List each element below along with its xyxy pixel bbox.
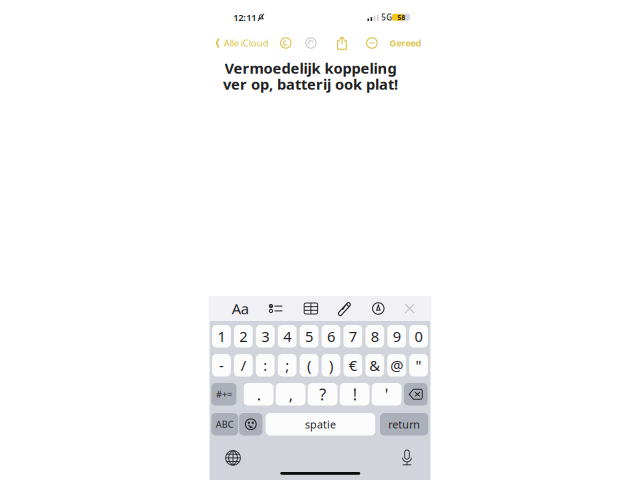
button[interactable]: 4: [278, 325, 296, 347]
staticText: 6: [327, 326, 335, 346]
staticText: (: [307, 355, 311, 375]
staticText: 2: [239, 326, 247, 346]
staticText: 12:11: [233, 11, 256, 23]
staticText: ?: [319, 384, 326, 405]
button[interactable]: 3: [256, 325, 275, 347]
staticText: -: [219, 355, 224, 375]
staticText: /: [241, 355, 246, 375]
button[interactable]: 1: [212, 325, 231, 347]
button[interactable]: 7: [343, 325, 362, 347]
button[interactable]: !: [340, 383, 369, 405]
staticText: €: [349, 355, 357, 375]
button[interactable]: &: [365, 354, 384, 376]
button[interactable]: Share: [331, 32, 353, 54]
button[interactable]: ': [372, 383, 401, 405]
button[interactable]: Undo: [275, 32, 297, 54]
button[interactable]: ?: [308, 383, 337, 405]
button[interactable]: ": [409, 354, 428, 376]
staticText: Vermoedelijk koppeling: [224, 58, 396, 78]
button[interactable]: 8: [365, 325, 384, 347]
button[interactable]: Redo: [300, 32, 322, 54]
staticText: Gereed: [389, 37, 421, 49]
staticText: !: [353, 384, 357, 405]
button[interactable]: Next keyboard: [219, 444, 247, 472]
button[interactable]: /: [234, 354, 253, 376]
staticText: &: [369, 355, 380, 375]
button[interactable]: 5: [300, 325, 318, 347]
staticText: 4: [283, 326, 291, 346]
staticText: 5G: [381, 12, 392, 23]
button[interactable]: -: [212, 354, 231, 376]
button[interactable]: return: [380, 413, 428, 435]
staticText: 5: [305, 326, 313, 346]
button[interactable]: Markup: [367, 296, 389, 320]
button[interactable]: 0: [409, 325, 428, 347]
button[interactable]: 2: [234, 325, 253, 347]
staticText: .: [257, 384, 261, 405]
staticText: 9: [393, 326, 401, 346]
staticText: 7: [349, 326, 357, 346]
staticText: ver op, batterij ook plat!: [223, 74, 398, 94]
staticText: 58: [398, 13, 406, 22]
button[interactable]: Table: [300, 296, 322, 320]
staticText: ABC: [216, 418, 234, 430]
button[interactable]: Text style: [227, 296, 253, 320]
button[interactable]: :: [256, 354, 275, 376]
button[interactable]: .: [244, 383, 273, 405]
staticText: ;: [285, 355, 289, 375]
staticText: ': [385, 384, 389, 405]
staticText: return: [388, 417, 420, 431]
button[interactable]: 9: [387, 325, 406, 347]
button[interactable]: ;: [278, 354, 296, 376]
button[interactable]: spatie: [266, 413, 375, 435]
button[interactable]: More: [361, 32, 383, 54]
button[interactable]: 6: [322, 325, 340, 347]
staticText: Alle iCloud: [224, 37, 269, 49]
button[interactable]: @: [387, 354, 406, 376]
button[interactable]: Checklist: [265, 296, 287, 320]
button[interactable]: Backspace: [404, 383, 428, 405]
staticText: Aa: [232, 299, 249, 318]
staticText: 3: [261, 326, 269, 346]
button[interactable]: €: [343, 354, 362, 376]
button[interactable]: ): [322, 354, 340, 376]
button[interactable]: Attach: [334, 296, 356, 320]
button[interactable]: Symbols: [211, 383, 236, 405]
button[interactable]: Gereed: [385, 32, 425, 54]
staticText: :: [263, 355, 267, 375]
staticText: ,: [289, 384, 293, 405]
staticText: 0: [415, 326, 423, 346]
staticText: 8: [371, 326, 379, 346]
staticText: @: [390, 355, 403, 375]
button[interactable]: Letters: [211, 413, 238, 435]
button[interactable]: Close: [399, 296, 421, 320]
staticText: 1: [217, 326, 225, 346]
staticText: ": [416, 355, 422, 375]
staticText: ): [329, 355, 333, 375]
button[interactable]: Alle iCloud: [215, 32, 272, 54]
button[interactable]: (: [300, 354, 318, 376]
button[interactable]: ,: [276, 383, 305, 405]
staticText: spatie: [305, 417, 336, 431]
button[interactable]: Dictate: [393, 444, 421, 472]
staticText: #+=: [216, 388, 232, 400]
button[interactable]: Emoji: [239, 413, 262, 435]
